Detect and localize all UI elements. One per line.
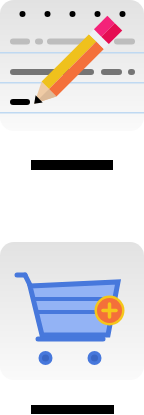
button[interactable] <box>0 0 144 131</box>
button[interactable] <box>0 160 144 170</box>
button[interactable] <box>0 242 144 380</box>
button[interactable] <box>0 405 144 414</box>
